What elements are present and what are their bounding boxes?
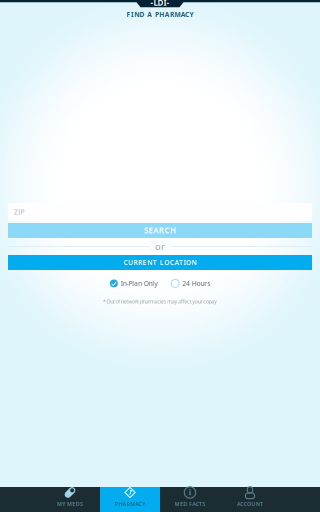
- staticText: -LDI-: [150, 0, 169, 8]
- staticText: MED FACTS: [175, 500, 205, 508]
- staticText: CURRENT LOCATION: [123, 258, 197, 267]
- staticText: ACCOUNT: [237, 500, 263, 508]
- button[interactable]: MY MEDS: [40, 487, 100, 512]
- button[interactable]: In-Plan Only: [110, 279, 157, 288]
- button[interactable]: 24 Hours: [171, 279, 210, 288]
- staticText: MY MEDS: [57, 500, 83, 508]
- staticText: * Out of network pharmacies may affect y…: [103, 298, 217, 305]
- button[interactable]: PHARMACY: [100, 487, 160, 512]
- staticText: PHARMACY: [115, 500, 145, 508]
- staticText: FIND A PHARMACY: [127, 10, 193, 19]
- button[interactable]: MED FACTS: [160, 487, 220, 512]
- button[interactable]: ACCOUNT: [220, 487, 280, 512]
- staticText: ZIP: [14, 208, 24, 216]
- staticText: SEARCH: [144, 225, 176, 236]
- staticText: or: [155, 240, 165, 253]
- staticText: 24 Hours: [182, 279, 210, 288]
- button[interactable]: CURRENT LOCATION: [8, 255, 312, 270]
- staticText: In-Plan Only: [121, 279, 157, 288]
- button[interactable]: SEARCH: [8, 223, 312, 238]
